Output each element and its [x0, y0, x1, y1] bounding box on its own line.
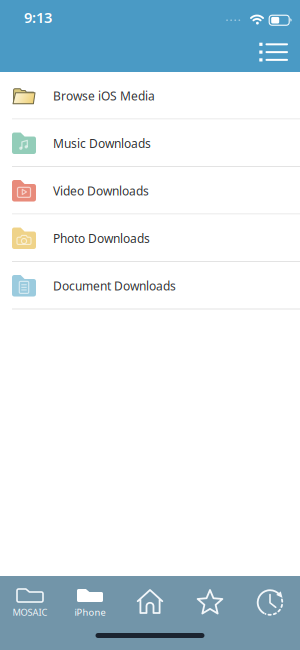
staticText: 9:13 — [24, 7, 52, 27]
staticText: MOSAIC — [12, 606, 47, 618]
button[interactable]: Music Downloads — [0, 119, 300, 167]
button[interactable]: Home — [120, 589, 180, 629]
button[interactable]: Menu — [259, 43, 300, 61]
button[interactable]: Browse iOS Media — [0, 72, 300, 119]
button[interactable]: Video Downloads — [0, 167, 300, 214]
staticText: Browse iOS Media — [53, 88, 155, 104]
button[interactable]: iPhone — [60, 589, 120, 629]
staticText: iPhone — [74, 606, 105, 618]
staticText: Video Downloads — [53, 183, 149, 199]
button[interactable]: Recents — [240, 589, 300, 629]
button[interactable]: MOSAIC — [0, 589, 60, 629]
staticText: Document Downloads — [53, 278, 176, 294]
button[interactable]: Favorites — [180, 589, 240, 629]
staticText: Photo Downloads — [53, 230, 150, 246]
button[interactable]: Document Downloads — [0, 262, 300, 309]
button[interactable]: Photo Downloads — [0, 214, 300, 262]
staticText: Music Downloads — [53, 135, 151, 151]
